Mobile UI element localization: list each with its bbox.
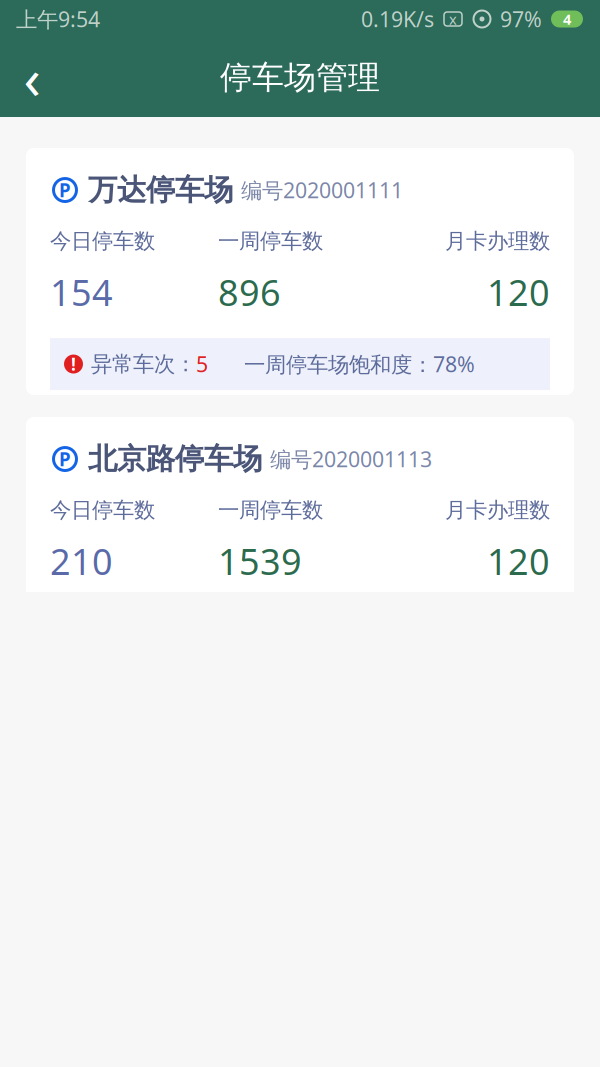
staticText: 4	[563, 9, 571, 29]
staticText: P	[59, 447, 71, 471]
staticText: 一周停车场饱和度：78%	[244, 350, 475, 378]
button[interactable]: P	[26, 417, 574, 664]
staticText: x	[449, 9, 457, 29]
staticText: 今日停车数	[50, 497, 155, 523]
staticText: 120	[487, 537, 550, 585]
staticText: 120	[487, 268, 550, 316]
staticText: P	[59, 178, 71, 202]
staticText: 154	[50, 268, 113, 316]
staticText: 210	[50, 537, 113, 585]
staticText: 97%	[500, 5, 542, 33]
staticText: 编号2020001113	[270, 445, 432, 473]
staticText: 停车场管理	[220, 58, 380, 97]
staticText: 万达停车场	[88, 172, 233, 208]
staticText: 月卡办理数	[445, 497, 550, 523]
staticText: 1539	[218, 537, 302, 585]
staticText: 5	[196, 350, 208, 378]
staticText: 异常车次：	[91, 351, 196, 377]
staticText: 一周停车数	[218, 228, 323, 254]
button[interactable]: Back	[0, 45, 64, 109]
staticText: 0.19K/s	[361, 5, 434, 33]
staticText: 北京路停车场	[88, 441, 262, 477]
staticText: 月卡办理数	[445, 228, 550, 254]
staticText: !	[71, 352, 76, 375]
staticText: 一周停车数	[218, 497, 323, 523]
button[interactable]: P	[26, 148, 574, 395]
staticText: ‹	[23, 40, 40, 115]
staticText: 编号2020001111	[241, 176, 403, 204]
staticText: 上午9:54	[16, 5, 100, 33]
staticText: 今日停车数	[50, 228, 155, 254]
staticText: 896	[218, 268, 281, 316]
